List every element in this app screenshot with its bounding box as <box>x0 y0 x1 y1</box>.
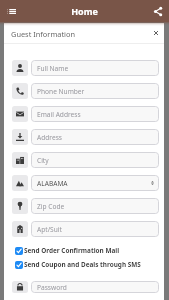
button[interactable]: Email Address <box>12 106 159 122</box>
staticText: Password <box>37 283 67 292</box>
staticText: Address <box>37 133 62 142</box>
button[interactable]: Phone Number <box>12 83 159 99</box>
staticText: Apt/Suit <box>37 225 62 234</box>
button[interactable]: Address <box>12 129 159 145</box>
button[interactable]: Share <box>147 0 169 22</box>
staticText: Send Order Confirmation Mail <box>24 246 120 255</box>
staticText: Guest Information <box>11 29 148 39</box>
button[interactable]: Full Name <box>12 60 159 76</box>
staticText: Email Address <box>37 110 81 119</box>
button[interactable]: Apt/Suit <box>12 221 159 237</box>
staticText: Send Coupon and Deals through SMS <box>24 260 141 269</box>
staticText: ALABAMA <box>37 179 68 188</box>
button[interactable]: ALABAMA <box>12 175 159 191</box>
button[interactable]: Close <box>148 25 164 41</box>
button[interactable]: City <box>12 152 159 168</box>
staticText: Full Name <box>37 64 69 73</box>
button[interactable]: Send Coupon and Deals through SMS <box>15 259 159 270</box>
button[interactable]: Menu <box>0 0 22 22</box>
staticText: Zip Code <box>37 202 65 211</box>
button[interactable]: Zip Code <box>12 198 159 214</box>
button[interactable]: Send Order Confirmation Mail <box>15 245 159 256</box>
staticText: City <box>37 156 49 165</box>
staticText: Phone Number <box>37 87 85 96</box>
button[interactable]: Password <box>12 281 159 293</box>
staticText: Home <box>22 5 147 17</box>
